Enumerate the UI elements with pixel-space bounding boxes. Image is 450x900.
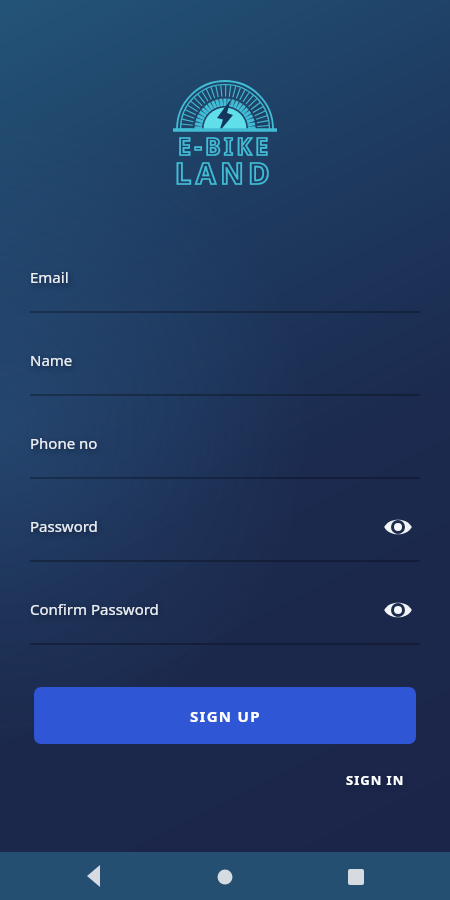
staticText: SIGN UP [190, 706, 261, 726]
button[interactable]: SIGN UP [34, 687, 416, 744]
button[interactable] [30, 510, 420, 566]
button[interactable] [30, 344, 420, 400]
staticText: Name [30, 350, 73, 370]
staticText: SIGN IN [346, 771, 405, 789]
staticText: Phone no [30, 433, 98, 453]
button[interactable] [205, 857, 245, 897]
staticText: Email [30, 267, 69, 287]
button[interactable] [383, 599, 413, 621]
button[interactable] [73, 857, 113, 897]
button[interactable] [336, 857, 376, 897]
staticText: E-BIKE [178, 130, 272, 161]
button[interactable] [30, 427, 420, 483]
staticText: Confirm Password [30, 599, 159, 619]
button[interactable] [30, 593, 420, 649]
staticText: Password [30, 516, 98, 536]
button[interactable] [383, 516, 413, 538]
button[interactable]: SIGN IN [336, 766, 414, 794]
staticText: LAND [175, 153, 275, 192]
button[interactable] [30, 261, 420, 317]
